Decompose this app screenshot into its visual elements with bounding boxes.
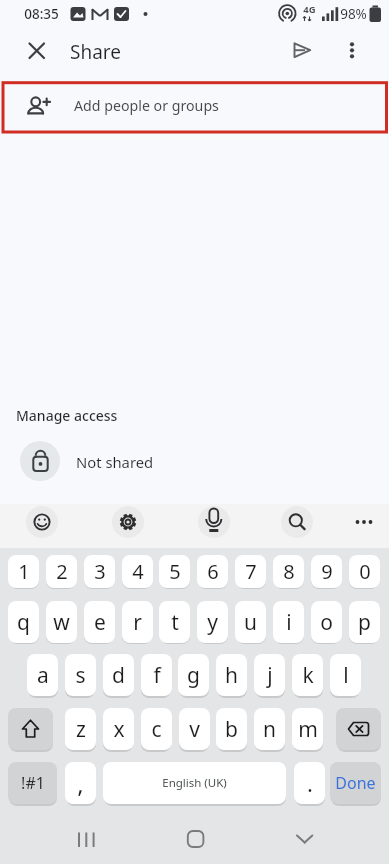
button[interactable]: f xyxy=(141,654,172,696)
button[interactable]: 1 xyxy=(8,555,39,588)
button[interactable] xyxy=(198,506,230,538)
button[interactable]: i xyxy=(273,601,304,643)
button[interactable] xyxy=(338,36,366,64)
staticText: 5 xyxy=(169,558,181,585)
button[interactable]: u xyxy=(235,601,266,643)
staticText: 98% xyxy=(340,5,367,23)
button[interactable] xyxy=(22,36,52,66)
button[interactable]: 3 xyxy=(84,555,115,588)
button[interactable]: e xyxy=(84,601,115,643)
staticText: q xyxy=(17,608,30,637)
staticText: Done xyxy=(335,772,376,794)
staticText: 9 xyxy=(321,558,333,585)
button[interactable]: w xyxy=(46,601,77,643)
button[interactable]: 5 xyxy=(159,555,190,588)
button[interactable]: y xyxy=(197,601,228,643)
button[interactable] xyxy=(288,36,316,64)
staticText: 7 xyxy=(245,558,257,585)
button[interactable]: q xyxy=(8,601,39,643)
button[interactable]: k xyxy=(292,654,323,696)
button[interactable] xyxy=(282,822,328,858)
button[interactable]: !#1 xyxy=(8,762,57,804)
button[interactable]: v xyxy=(179,708,210,750)
button[interactable]: 6 xyxy=(197,555,228,588)
button[interactable]: l xyxy=(330,654,361,696)
button[interactable]: Done xyxy=(330,762,381,804)
button[interactable]: d xyxy=(103,654,134,696)
button[interactable] xyxy=(336,708,381,750)
button[interactable]: n xyxy=(254,708,285,750)
staticText: u xyxy=(244,608,257,637)
staticText: o xyxy=(320,608,333,637)
staticText: r xyxy=(133,608,142,637)
button[interactable]: 4 xyxy=(122,555,153,588)
button[interactable]: c xyxy=(141,708,172,750)
staticText: 4G xyxy=(303,3,316,15)
staticText: 6 xyxy=(207,558,219,585)
button[interactable] xyxy=(281,506,313,538)
button[interactable]: p xyxy=(349,601,380,643)
button[interactable]: s xyxy=(65,654,96,696)
button[interactable]: 8 xyxy=(273,555,304,588)
button[interactable]: m xyxy=(292,708,323,750)
staticText: !#1 xyxy=(21,772,45,794)
staticText: m xyxy=(298,715,318,744)
staticText: 1 xyxy=(18,558,30,585)
staticText: s xyxy=(75,661,86,690)
button[interactable]: o xyxy=(311,601,342,643)
button[interactable]: 2 xyxy=(46,555,77,588)
staticText: 8 xyxy=(283,558,295,585)
staticText: h xyxy=(225,661,238,690)
staticText: g xyxy=(187,661,200,690)
staticText: v xyxy=(189,715,200,744)
staticText: d xyxy=(112,661,125,690)
button[interactable] xyxy=(348,506,380,538)
button[interactable] xyxy=(8,708,53,750)
staticText: Share xyxy=(70,39,122,63)
staticText: 4 xyxy=(132,558,144,585)
staticText: . xyxy=(307,768,313,798)
button[interactable]: 0 xyxy=(349,555,380,588)
button[interactable] xyxy=(56,822,102,858)
staticText: Add people or groups xyxy=(74,96,219,115)
button[interactable] xyxy=(14,84,375,130)
button[interactable]: 7 xyxy=(235,555,266,588)
button[interactable]: g xyxy=(178,654,209,696)
staticText: x xyxy=(113,715,125,744)
button[interactable]: b xyxy=(216,708,247,750)
button[interactable]: . xyxy=(294,762,325,804)
staticText: Manage access xyxy=(16,406,118,425)
staticText: k xyxy=(302,661,314,690)
button[interactable]: a xyxy=(27,654,58,696)
staticText: t xyxy=(171,608,179,637)
staticText: 08:35 xyxy=(24,5,59,23)
button[interactable] xyxy=(26,506,58,538)
staticText: , xyxy=(77,767,84,800)
staticText: c xyxy=(151,715,162,744)
button[interactable]: 9 xyxy=(311,555,342,588)
button[interactable]: x xyxy=(103,708,134,750)
button[interactable]: t xyxy=(159,601,190,643)
staticText: j xyxy=(267,661,273,690)
button[interactable] xyxy=(10,436,379,486)
staticText: i xyxy=(286,608,292,637)
staticText: 0 xyxy=(359,558,371,585)
button[interactable]: z xyxy=(65,708,96,750)
staticText: f xyxy=(153,661,161,690)
staticText: z xyxy=(76,715,86,744)
staticText: Not shared xyxy=(76,452,154,472)
button[interactable]: h xyxy=(216,654,247,696)
button[interactable]: r xyxy=(122,601,153,643)
button[interactable]: English (UK) xyxy=(103,762,286,804)
staticText: n xyxy=(263,715,276,744)
staticText: y xyxy=(207,608,218,637)
staticText: a xyxy=(37,661,49,690)
button[interactable] xyxy=(112,506,144,538)
button[interactable] xyxy=(172,822,218,858)
staticText: English (UK) xyxy=(162,775,227,791)
staticText: l xyxy=(343,661,349,690)
button[interactable]: j xyxy=(254,654,285,696)
button[interactable]: , xyxy=(65,762,96,804)
staticText: b xyxy=(225,715,238,744)
staticText: p xyxy=(358,608,371,637)
